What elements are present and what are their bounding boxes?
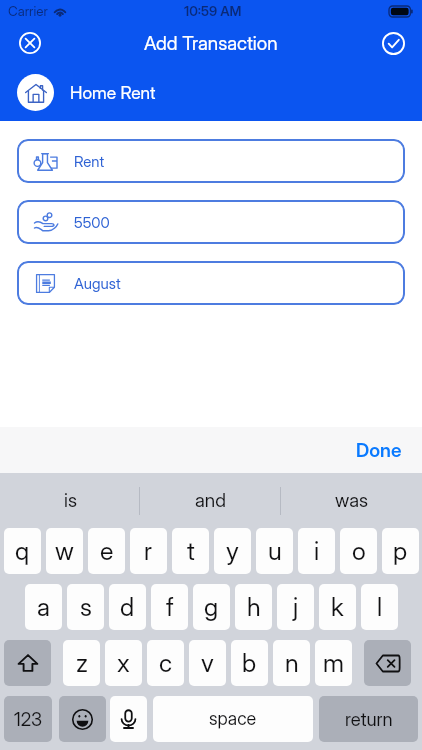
button[interactable]: o xyxy=(340,528,377,574)
staticText: 5500 xyxy=(74,213,110,231)
button[interactable]: space xyxy=(153,696,313,742)
button[interactable]: Emoji xyxy=(59,696,106,742)
button[interactable]: 5500 xyxy=(17,200,405,244)
staticText: g xyxy=(204,592,219,622)
button[interactable]: d xyxy=(109,584,146,630)
staticText: t xyxy=(187,536,195,566)
staticText: o xyxy=(352,536,366,566)
staticText: Add Transaction xyxy=(144,32,278,55)
button[interactable]: r xyxy=(130,528,167,574)
button[interactable]: y xyxy=(214,528,251,574)
button[interactable]: return xyxy=(319,696,418,742)
staticText: s xyxy=(80,592,92,622)
staticText: and xyxy=(195,489,226,512)
button[interactable]: u xyxy=(256,528,293,574)
staticText: August xyxy=(74,274,121,292)
button[interactable]: h xyxy=(235,584,272,630)
button[interactable]: f xyxy=(151,584,188,630)
staticText: q xyxy=(15,536,30,566)
staticText: f xyxy=(166,592,174,622)
staticText: c xyxy=(159,648,173,678)
button[interactable]: c xyxy=(147,640,184,686)
staticText: z xyxy=(76,648,88,678)
button[interactable]: Shift xyxy=(4,640,51,686)
staticText: Done xyxy=(356,439,402,462)
staticText: h xyxy=(247,592,261,622)
staticText: j xyxy=(293,592,299,622)
button[interactable]: Backspace xyxy=(364,640,411,686)
button[interactable]: s xyxy=(67,584,104,630)
staticText: is xyxy=(64,489,77,512)
button[interactable]: Category xyxy=(17,74,54,111)
staticText: m xyxy=(323,648,344,678)
button[interactable]: w xyxy=(46,528,83,574)
staticText: r xyxy=(144,536,153,566)
staticText: was xyxy=(335,489,369,512)
staticText: l xyxy=(377,592,383,622)
button[interactable]: z xyxy=(63,640,100,686)
staticText: 10:59 AM xyxy=(184,3,242,19)
button[interactable]: k xyxy=(319,584,356,630)
staticText: y xyxy=(226,536,239,566)
button[interactable]: i xyxy=(298,528,335,574)
staticText: Rent xyxy=(74,152,105,170)
button[interactable]: Done xyxy=(356,439,402,462)
staticText: w xyxy=(55,536,74,566)
button[interactable]: x xyxy=(105,640,142,686)
button[interactable]: Close xyxy=(9,22,51,64)
staticText: e xyxy=(100,536,114,566)
staticText: b xyxy=(242,648,257,678)
button[interactable]: a xyxy=(25,584,62,630)
button[interactable]: m xyxy=(315,640,352,686)
button[interactable]: q xyxy=(4,528,41,574)
button[interactable]: and xyxy=(140,473,281,528)
button[interactable]: v xyxy=(189,640,226,686)
button[interactable]: 123 xyxy=(4,696,52,742)
button[interactable]: j xyxy=(277,584,314,630)
staticText: n xyxy=(285,648,299,678)
staticText: Carrier xyxy=(8,3,48,19)
button[interactable]: was xyxy=(281,473,422,528)
button[interactable]: l xyxy=(361,584,398,630)
staticText: u xyxy=(268,536,282,566)
staticText: a xyxy=(37,592,50,622)
staticText: k xyxy=(331,592,344,622)
staticText: i xyxy=(314,536,320,566)
button[interactable]: Confirm xyxy=(372,22,414,64)
staticText: Home Rent xyxy=(70,82,156,103)
button[interactable]: t xyxy=(172,528,209,574)
button[interactable]: e xyxy=(88,528,125,574)
button[interactable]: b xyxy=(231,640,268,686)
staticText: p xyxy=(393,536,408,566)
button[interactable]: August xyxy=(17,261,405,305)
button[interactable]: p xyxy=(382,528,419,574)
button[interactable]: is xyxy=(0,473,140,528)
staticText: x xyxy=(117,648,130,678)
button[interactable]: Dictate xyxy=(110,696,147,742)
button[interactable]: g xyxy=(193,584,230,630)
button[interactable]: n xyxy=(273,640,310,686)
button[interactable]: Rent xyxy=(17,139,405,183)
staticText: d xyxy=(120,592,135,622)
staticText: v xyxy=(201,648,214,678)
staticText: 123 xyxy=(14,708,43,730)
staticText: return xyxy=(345,708,393,730)
staticText: space xyxy=(209,708,257,730)
